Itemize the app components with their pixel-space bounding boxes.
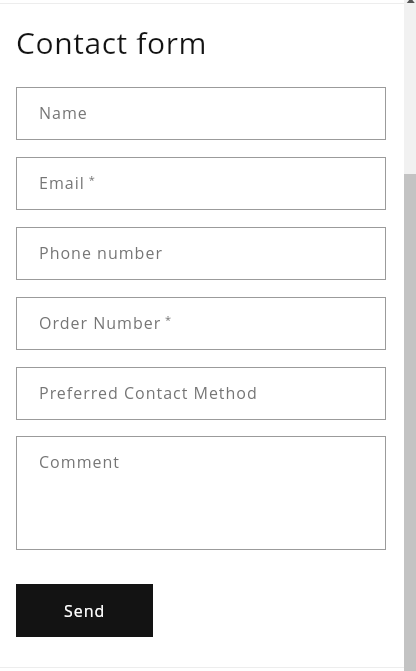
staticText: Email * xyxy=(39,172,96,194)
staticText: Order Number * xyxy=(39,312,173,334)
button[interactable]: Order Number * xyxy=(16,297,386,350)
button[interactable]: Comment xyxy=(16,436,386,550)
staticText: Preferred Contact Method xyxy=(39,382,258,404)
staticText: Phone number xyxy=(39,242,163,264)
button[interactable]: Scroll up xyxy=(404,0,416,6)
button[interactable]: Name xyxy=(16,87,386,140)
button[interactable]: Send xyxy=(16,584,153,637)
staticText: Comment xyxy=(39,451,120,473)
staticText: Send xyxy=(64,600,106,622)
button[interactable]: Preferred Contact Method xyxy=(16,367,386,420)
button[interactable]: Email * xyxy=(16,157,386,210)
staticText: Name xyxy=(39,102,88,124)
staticText: Contact form xyxy=(16,22,208,63)
button[interactable]: Phone number xyxy=(16,227,386,280)
